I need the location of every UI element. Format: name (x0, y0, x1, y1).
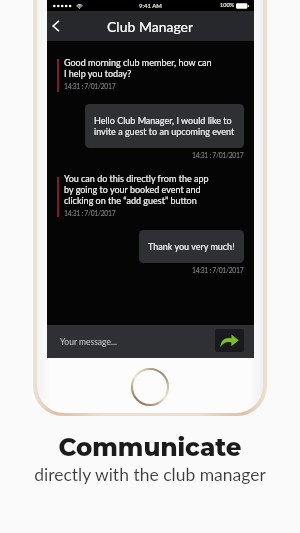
staticText: Club Manager (107, 18, 194, 35)
staticText: 100% (220, 2, 234, 9)
button[interactable]: Send (215, 329, 244, 352)
staticText: You can do this directly from the app (64, 173, 209, 184)
staticText: clicking on the “add guest” button (64, 195, 197, 206)
staticText: Your message... (60, 337, 117, 347)
staticText: 14:31 : 7/01/2017 (192, 151, 244, 159)
staticText: 14:31 : 7/01/2017 (192, 266, 244, 274)
staticText: Thank you very much! (148, 241, 235, 252)
staticText: Communicate (58, 432, 242, 462)
staticText: Hello Club Manager, I would like to (94, 115, 232, 126)
button[interactable]: Back (47, 11, 71, 41)
staticText: 9:41 AM (139, 2, 162, 9)
staticText: 14:31 : 7/01/2017 (64, 209, 116, 217)
staticText: 14:31 : 7/01/2017 (64, 82, 116, 90)
staticText: by going to your booked event and (64, 184, 201, 195)
staticText: directly with the club manager (34, 464, 266, 485)
staticText: I help you today? (64, 68, 132, 79)
staticText: invite a guest to an upcoming event (94, 126, 235, 137)
staticText: Good morning club member, how can (64, 57, 212, 68)
